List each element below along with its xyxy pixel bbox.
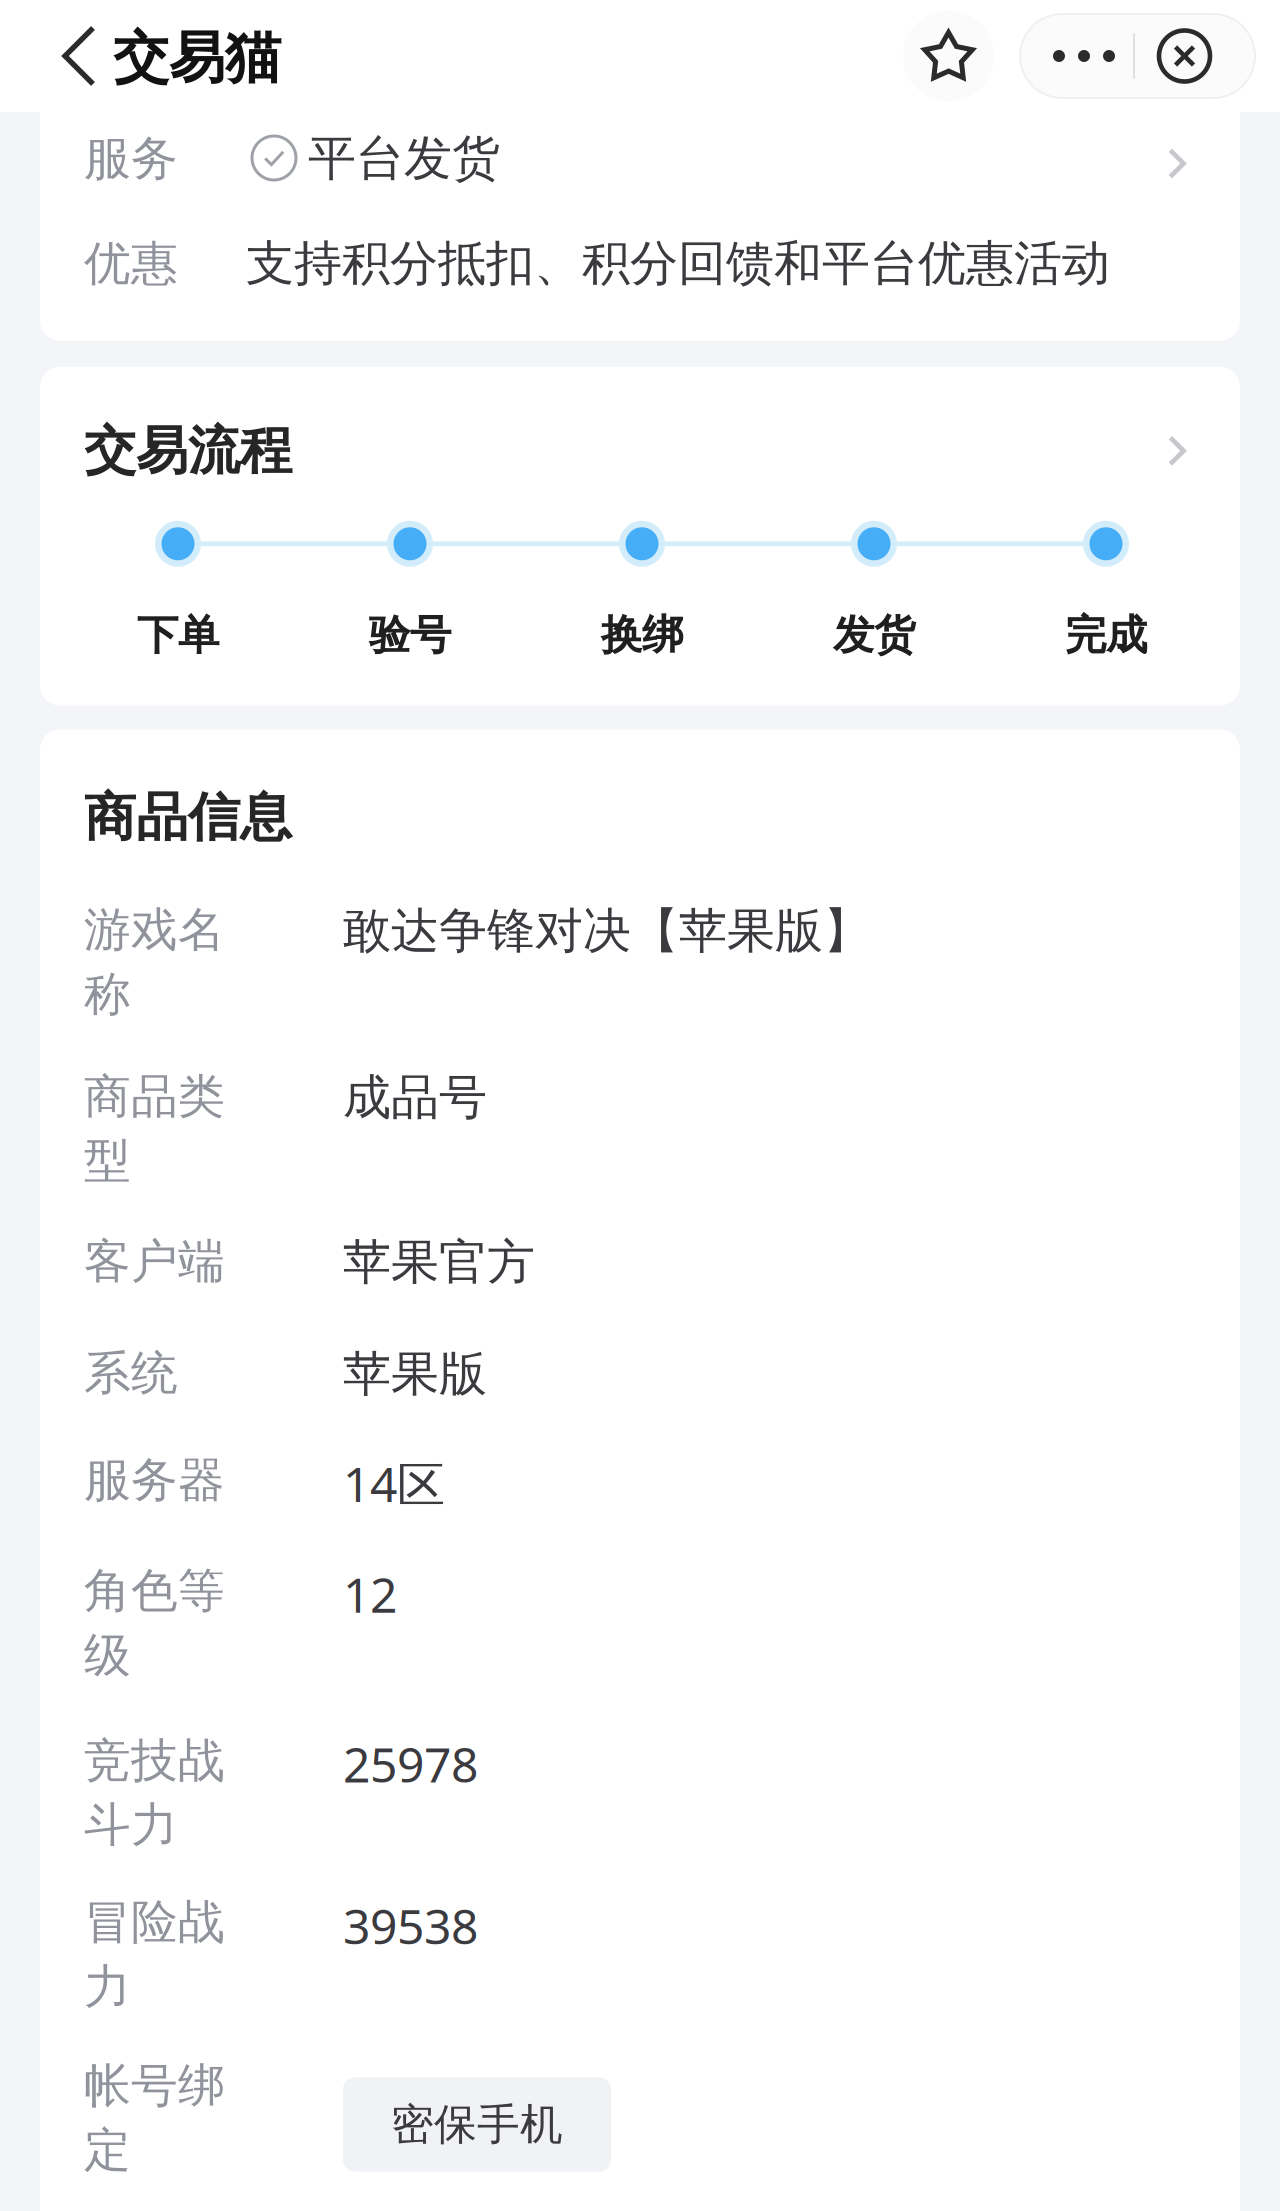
button[interactable]: 关闭 [1135, 14, 1255, 98]
button[interactable]: 收藏 [903, 10, 994, 101]
staticText: 平台发货 [308, 129, 500, 188]
staticText: 交易流程 [84, 419, 292, 483]
staticText: 商品类型 [84, 1068, 225, 1190]
staticText: 苹果版 [343, 1345, 487, 1404]
staticText: 竞技战斗力 [84, 1732, 225, 1854]
staticText: 发货 [833, 610, 915, 661]
staticText: 验号 [369, 610, 451, 661]
staticText: 系统 [84, 1345, 178, 1402]
staticText: 苹果官方 [343, 1233, 535, 1292]
button[interactable]: 服务 [40, 130, 1240, 188]
staticText: 支持积分抵扣、积分回馈和平台优惠活动 [246, 234, 1110, 293]
staticText: 游戏名称 [84, 901, 225, 1023]
staticText: 下单 [137, 610, 219, 661]
staticText: 商品信息 [84, 786, 292, 849]
staticText: 角色等级 [84, 1562, 225, 1684]
staticText: 服务器 [84, 1452, 225, 1509]
staticText: 密保手机 [391, 2098, 563, 2151]
staticText: 39538 [343, 1894, 478, 1957]
staticText: 12 [343, 1562, 397, 1626]
staticText: 换绑 [601, 610, 683, 661]
staticText: 25978 [343, 1732, 478, 1796]
staticText: 冒险战力 [84, 1894, 225, 2015]
button[interactable]: 更多 [1020, 14, 1133, 98]
staticText: 客户端 [84, 1233, 225, 1290]
staticText: 敢达争锋对决【苹果版】 [343, 901, 871, 960]
button[interactable]: 交易流程 [40, 367, 1240, 705]
staticText: 14区 [343, 1452, 445, 1515]
staticText: 帐号绑定 [84, 2057, 225, 2179]
staticText: 成品号 [343, 1068, 487, 1127]
staticText: 完成 [1065, 610, 1147, 661]
staticText: 优惠 [84, 235, 178, 292]
staticText: 服务 [84, 130, 178, 187]
staticText: 交易猫 [113, 24, 281, 92]
button[interactable]: 交易猫 [0, 0, 307, 112]
